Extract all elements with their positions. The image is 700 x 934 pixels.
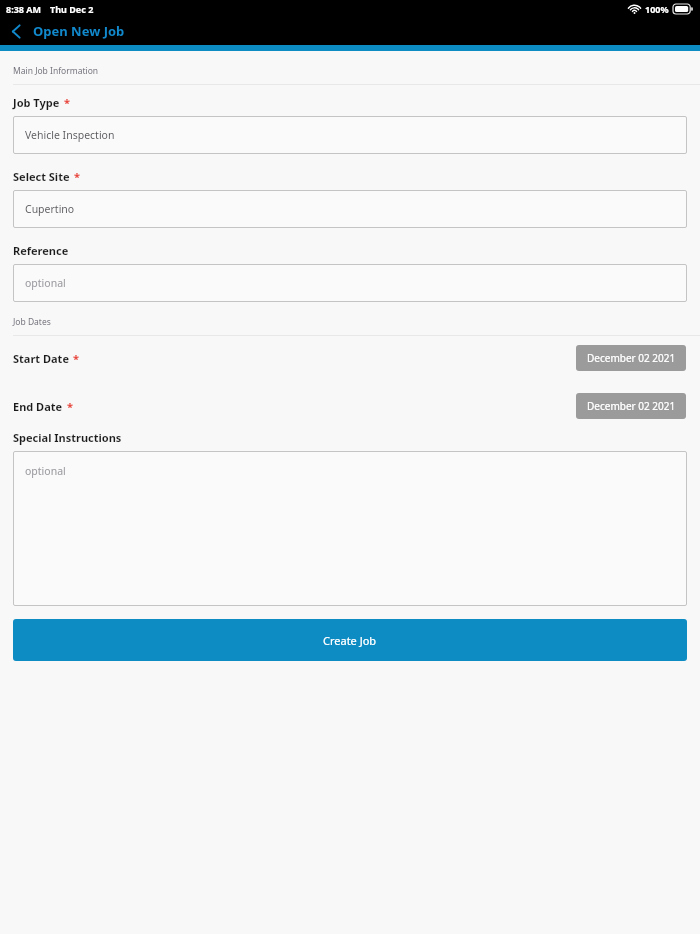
button[interactable]: optional xyxy=(13,264,687,302)
staticText: End Date xyxy=(13,399,63,414)
staticText: * xyxy=(64,95,70,110)
staticText: Job Type xyxy=(13,95,60,110)
staticText: Job Dates xyxy=(13,316,51,328)
staticText: December 02 2021 xyxy=(587,351,676,365)
staticText: Main Job Information xyxy=(13,65,99,77)
staticText: Vehicle Inspection xyxy=(25,128,115,142)
staticText: Thu Dec 2 xyxy=(50,3,94,15)
staticText: Create Job xyxy=(323,633,377,648)
staticText: * xyxy=(67,399,73,414)
staticText: 100% xyxy=(645,3,669,15)
staticText: * xyxy=(74,169,80,184)
staticText: Open New Job xyxy=(33,22,125,40)
staticText: 8:38 AM xyxy=(6,3,42,15)
button[interactable]: Cupertino xyxy=(13,190,687,228)
staticText: optional xyxy=(25,276,66,290)
button[interactable]: December 02 2021 xyxy=(576,393,686,419)
button[interactable]: December 02 2021 xyxy=(576,345,686,371)
staticText: Select Site xyxy=(13,169,70,184)
button[interactable]: Back xyxy=(0,17,33,45)
staticText: Start Date xyxy=(13,351,69,366)
button[interactable]: optional xyxy=(13,451,687,606)
button[interactable]: Create Job xyxy=(13,619,687,661)
staticText: Cupertino xyxy=(25,202,75,216)
button[interactable]: Vehicle Inspection xyxy=(13,116,687,154)
staticText: * xyxy=(73,351,79,366)
staticText: December 02 2021 xyxy=(587,399,676,413)
staticText: optional xyxy=(25,464,66,478)
staticText: Reference xyxy=(13,243,69,258)
staticText: Special Instructions xyxy=(13,430,122,445)
